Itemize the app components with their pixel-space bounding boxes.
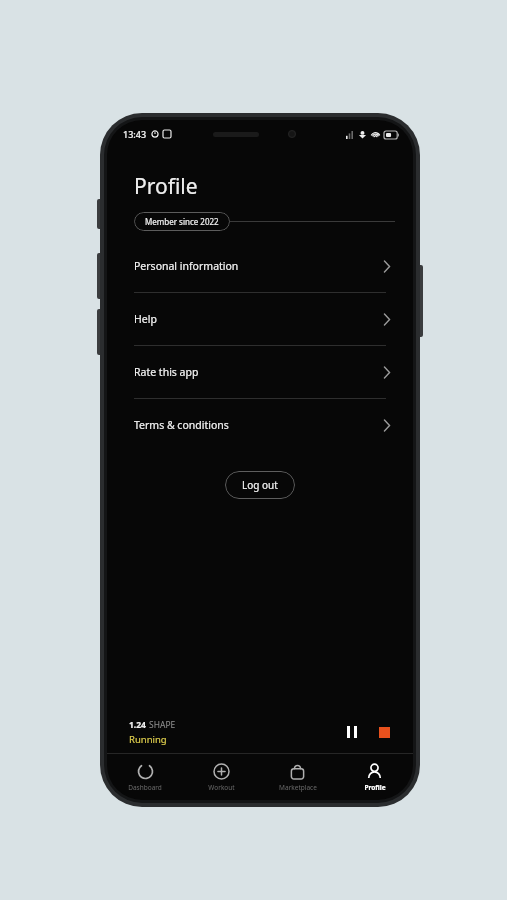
button[interactable]: Workout — [183, 754, 259, 800]
staticText: Marketplace — [279, 783, 317, 792]
button[interactable]: Member since 2022 — [134, 212, 230, 231]
staticText: Terms & conditions — [134, 418, 229, 432]
staticText: Profile — [134, 172, 198, 201]
staticText: 1.24 — [129, 719, 146, 731]
button[interactable]: Marketplace — [259, 754, 336, 800]
staticText: Log out — [242, 478, 278, 492]
button[interactable]: Rate this app — [107, 346, 413, 398]
staticText: Personal information — [134, 259, 239, 273]
button[interactable]: 1.24 — [107, 711, 413, 753]
staticText: Workout — [208, 783, 235, 792]
staticText: Profile — [364, 783, 386, 792]
button[interactable]: Dashboard — [107, 754, 183, 800]
staticText: Member since 2022 — [145, 216, 219, 227]
button[interactable]: Personal information — [107, 240, 413, 292]
staticText: Running — [129, 733, 167, 746]
staticText: Dashboard — [128, 783, 162, 792]
staticText: Help — [134, 312, 157, 326]
staticText: 13:43 — [123, 128, 147, 140]
button[interactable]: Terms & conditions — [107, 399, 413, 451]
button[interactable]: Pause — [341, 721, 363, 743]
staticText: Rate this app — [134, 365, 199, 379]
button[interactable]: Help — [107, 293, 413, 345]
button[interactable]: Profile — [336, 754, 413, 800]
button[interactable]: Log out — [225, 471, 295, 499]
staticText: SHAPE — [149, 719, 176, 731]
button[interactable]: Stop — [373, 721, 395, 743]
